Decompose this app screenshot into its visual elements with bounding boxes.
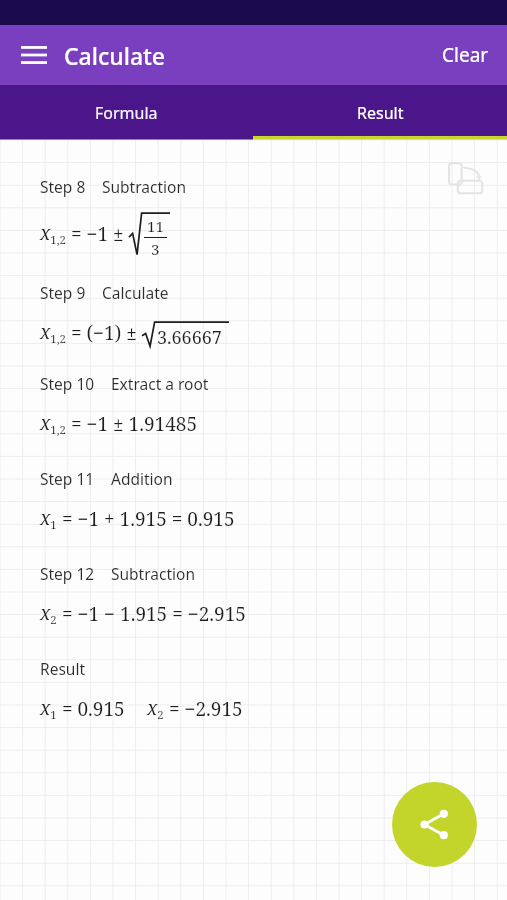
staticText: Step 8 — [40, 176, 86, 197]
button[interactable]: Share — [392, 782, 477, 867]
staticText: x1,2 — [40, 220, 66, 248]
staticText: = −1 + 1.915 = 0.915 — [57, 506, 235, 532]
staticText: Formula — [95, 102, 158, 124]
staticText: x2 — [40, 600, 57, 628]
button[interactable]: Result — [253, 85, 507, 140]
staticText: x1 — [40, 505, 57, 533]
staticText: Clear — [442, 42, 489, 68]
staticText: Subtraction — [102, 176, 186, 197]
button[interactable]: Formula — [0, 85, 253, 140]
staticText: x1,2 — [40, 410, 66, 438]
staticText: = −2.915 — [164, 696, 243, 722]
staticText: x1 — [40, 695, 57, 723]
staticText: = 0.915 — [57, 696, 125, 722]
staticText: 3 — [151, 239, 160, 256]
staticText: = (−1) ± — [66, 320, 142, 346]
staticText: x1,2 — [40, 319, 66, 347]
button[interactable]: Rotate screen — [441, 156, 489, 204]
staticText: Step 11 — [40, 468, 95, 489]
staticText: Result — [40, 658, 85, 679]
staticText: 3.66667 — [157, 325, 222, 347]
staticText: x2 — [147, 695, 164, 723]
staticText: Calculate — [64, 40, 166, 71]
staticText: Result — [357, 102, 404, 124]
button[interactable]: Clear — [424, 25, 507, 85]
staticText: Step 12 — [40, 563, 95, 584]
staticText: 11 — [147, 216, 164, 236]
staticText: Addition — [111, 468, 173, 489]
staticText: = −1 − 1.915 = −2.915 — [57, 601, 246, 627]
staticText: Extract a root — [111, 373, 209, 394]
staticText: = −1 ± — [66, 221, 129, 247]
staticText: = −1 ± 1.91485 — [66, 411, 198, 437]
staticText: Step 9 — [40, 282, 86, 303]
staticText: Calculate — [102, 282, 169, 303]
staticText: Subtraction — [111, 563, 195, 584]
button[interactable]: Open navigation menu — [12, 33, 56, 77]
staticText: Step 10 — [40, 373, 95, 394]
